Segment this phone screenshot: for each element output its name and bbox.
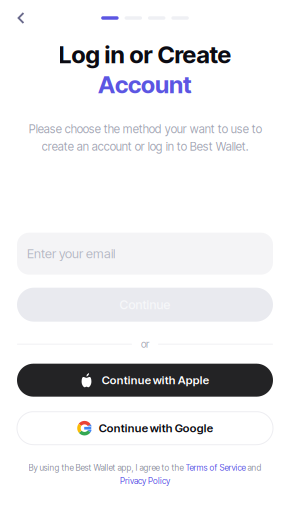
- staticText: and: [245, 463, 261, 473]
- staticText: Privacy Policy: [120, 476, 170, 486]
- staticText: Continue with Google: [99, 421, 213, 435]
- button[interactable]: Terms of Service: [185, 463, 245, 473]
- staticText: Terms of Service: [185, 463, 245, 473]
- staticText: Please choose the method your want to us…: [28, 122, 261, 154]
- button[interactable]: Privacy Policy: [120, 476, 170, 486]
- button[interactable]: Continue: [0, 288, 290, 322]
- staticText: Account: [98, 70, 192, 99]
- staticText: Enter your email: [27, 246, 115, 261]
- staticText: Continue: [119, 297, 170, 312]
- staticText: or: [141, 338, 149, 350]
- button[interactable]: Continue with Google: [0, 412, 290, 445]
- button[interactable]: Back: [0, 5, 42, 31]
- staticText: By using the Best Wallet app, I agree to…: [28, 463, 185, 473]
- staticText: Log in or Create: [58, 40, 231, 69]
- button[interactable]: Continue with Apple: [0, 364, 290, 397]
- staticText: Continue with Apple: [102, 373, 209, 387]
